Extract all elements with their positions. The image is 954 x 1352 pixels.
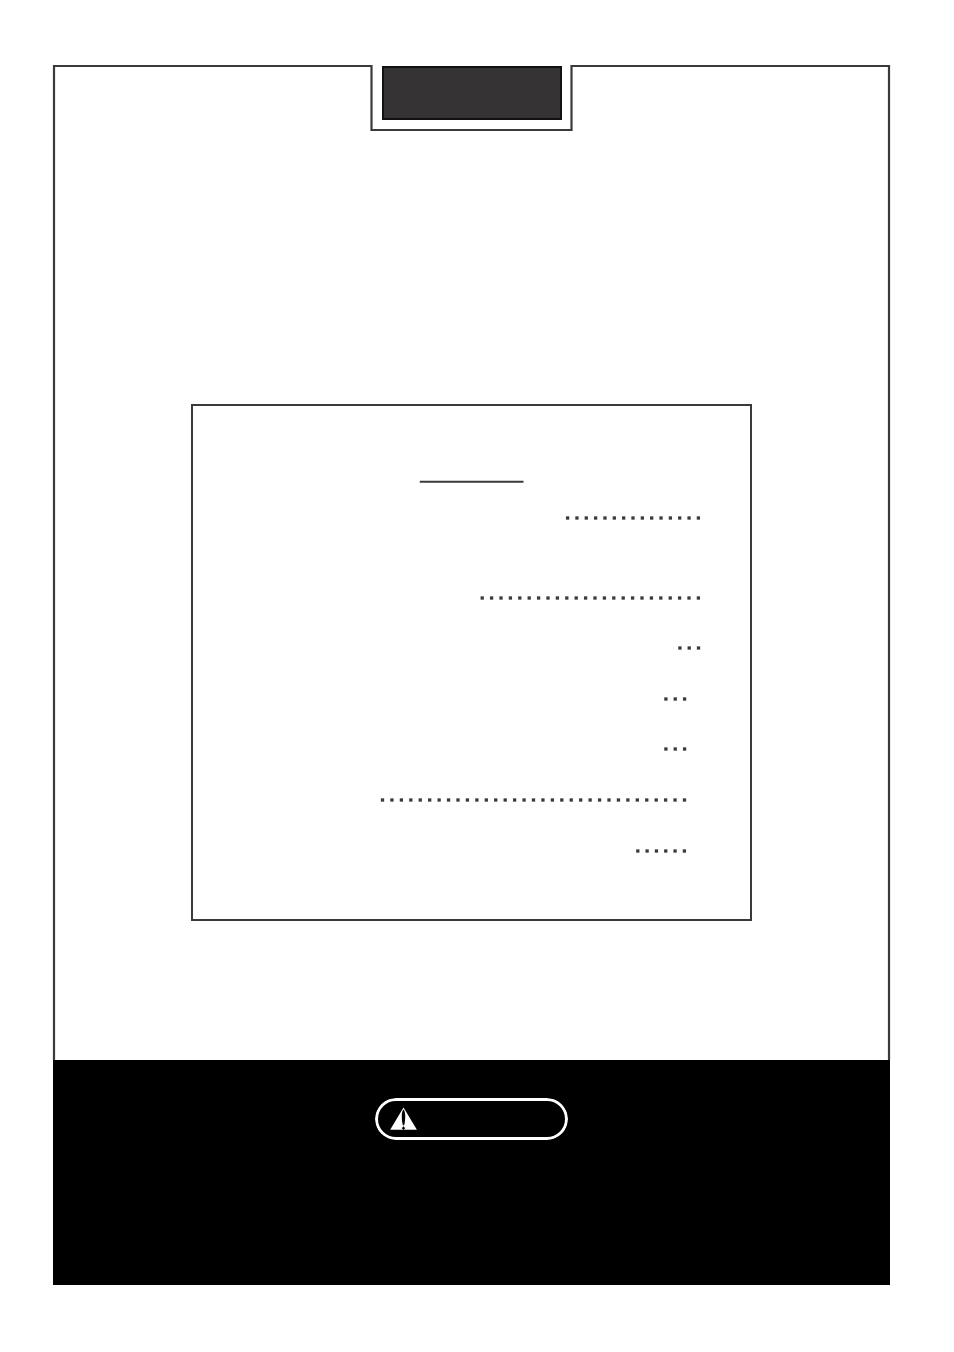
button[interactable]: Contents entry 4 [199,682,744,716]
button[interactable]: Caution [375,1098,568,1140]
button[interactable]: Manual title [382,66,562,120]
button[interactable]: Contents entry 1 [199,501,744,535]
button[interactable]: Contents entry 5 [199,732,744,766]
button[interactable]: Contents entry 2 [199,581,744,615]
button[interactable]: Contents entry 6 [199,783,744,817]
button[interactable]: Contents entry 7 [199,834,744,868]
button[interactable]: Contents entry 3 [199,631,744,665]
